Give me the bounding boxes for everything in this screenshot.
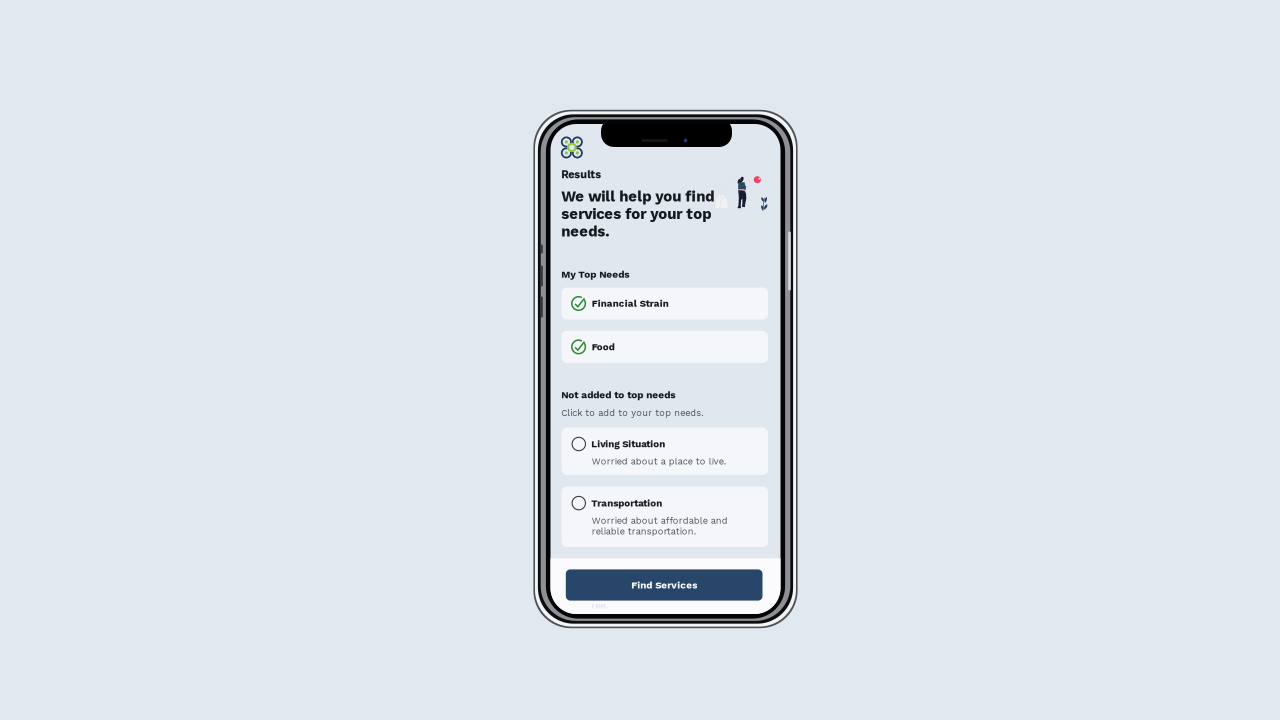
button[interactable]: Find Services (566, 569, 762, 601)
button[interactable]: Transportation (561, 486, 768, 547)
staticText: ree. (591, 600, 607, 611)
staticText: Transportation (591, 497, 662, 509)
staticText: Worried about a place to live. (592, 456, 726, 467)
button[interactable]: Financial Strain (561, 287, 768, 319)
staticText: Worried about affordable and reliable tr… (592, 515, 728, 537)
staticText: Financial Strain (592, 298, 669, 309)
staticText: Results (561, 168, 601, 181)
staticText: My Top Needs (561, 268, 629, 280)
button[interactable]: Living Situation (561, 427, 768, 475)
staticText: Find Services (631, 579, 697, 591)
staticText: Click to add to your top needs. (561, 407, 703, 418)
button[interactable]: Food (561, 331, 768, 363)
staticText: Food (592, 341, 615, 353)
staticText: Not added to top needs (561, 389, 675, 401)
staticText: Living Situation (591, 438, 665, 450)
staticText: We will help you find services for your … (561, 187, 714, 240)
